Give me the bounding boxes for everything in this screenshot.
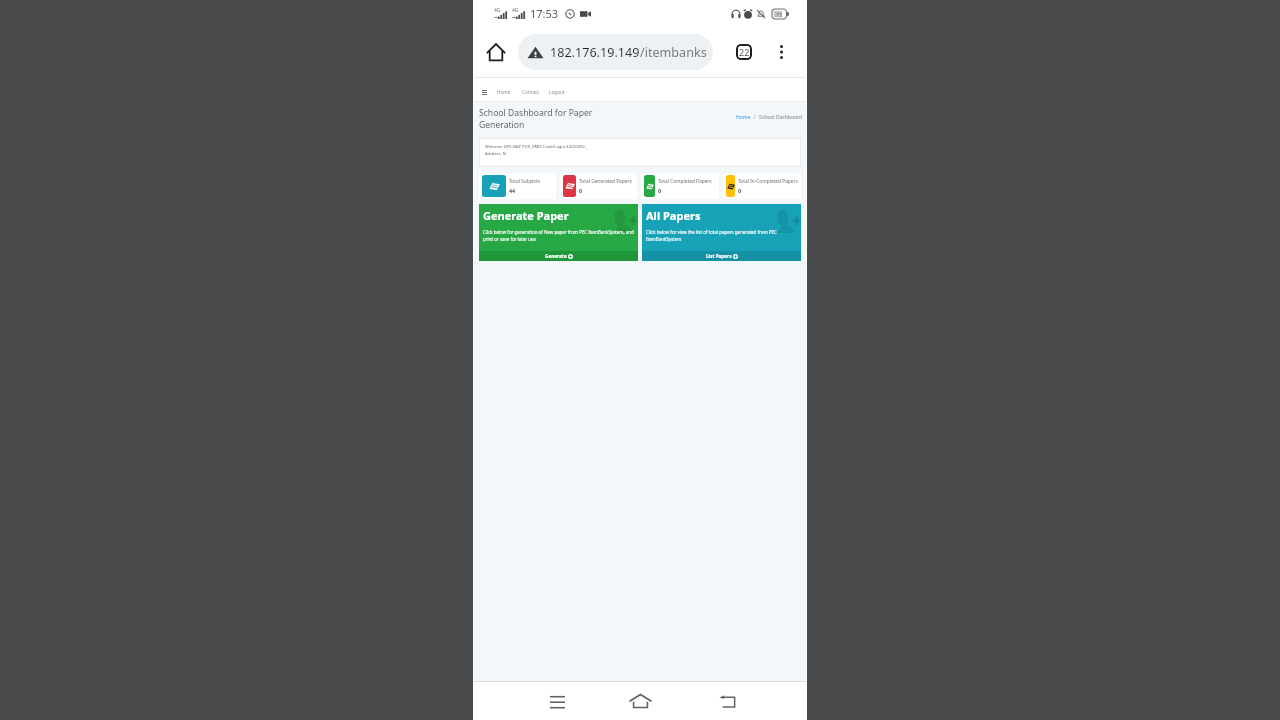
staticText: Contact (522, 89, 539, 95)
staticText: Generate (545, 253, 567, 259)
button[interactable]: More options (769, 40, 793, 64)
staticText: 0 (738, 187, 742, 194)
staticText: /itembanks (640, 44, 707, 61)
button[interactable]: All Papers (642, 204, 801, 261)
staticText: Total Subjects (509, 178, 540, 185)
staticText: List Papers (706, 253, 732, 259)
button[interactable]: Address bar (518, 34, 713, 70)
button[interactable]: Home (484, 40, 508, 64)
staticText: School Dashboard (759, 114, 802, 121)
button[interactable]: Back (705, 682, 749, 720)
staticText: Total Generated Papers (579, 178, 632, 185)
staticText: 73 (776, 11, 783, 18)
staticText: 22 (739, 46, 750, 58)
staticText: Generate Paper (483, 208, 569, 223)
staticText: Logout (549, 89, 565, 95)
staticText: / (751, 114, 759, 121)
button[interactable]: Home (736, 114, 751, 121)
button[interactable]: Home (618, 682, 662, 720)
button[interactable]: Contact (522, 89, 539, 95)
button[interactable]: Tabs (732, 40, 756, 64)
staticText: 4G (512, 7, 519, 14)
staticText: Click below for generation of New paper … (483, 229, 637, 243)
button[interactable]: Total Generated Papers (560, 173, 637, 199)
button[interactable]: Generate Paper (479, 204, 638, 261)
staticText: Home (497, 89, 511, 95)
staticText: Total Completed Papers (658, 178, 712, 185)
staticText: 0 (658, 187, 662, 194)
button[interactable]: List Papers (642, 251, 801, 261)
staticText: 182.176.19.149 (550, 44, 640, 61)
staticText: 17:53 (530, 6, 559, 21)
button[interactable]: Generate (479, 251, 638, 261)
staticText: Click below for view the list of total p… (646, 229, 800, 243)
button[interactable]: Total Completed Papers (641, 173, 719, 199)
button[interactable]: Menu (478, 86, 490, 98)
button[interactable]: Total In-Completed Papers (723, 173, 801, 199)
staticText: 4G (494, 7, 501, 14)
staticText: 0 (579, 187, 583, 194)
button[interactable]: Recents (535, 682, 579, 720)
staticText: All Papers (646, 208, 701, 223)
staticText: Welcome GPS FAIZ PUR, EMIS Code/Login:34… (485, 144, 587, 156)
button[interactable]: Logout (549, 89, 565, 95)
staticText: 44 (509, 187, 516, 194)
staticText: School Dashboard for Paper (479, 107, 593, 119)
staticText: Home (736, 114, 751, 121)
button[interactable]: Total Subjects (479, 173, 556, 199)
staticText: Generation (479, 119, 525, 131)
button[interactable]: Home (497, 89, 511, 95)
staticText: Total In-Completed Papers (738, 178, 798, 185)
